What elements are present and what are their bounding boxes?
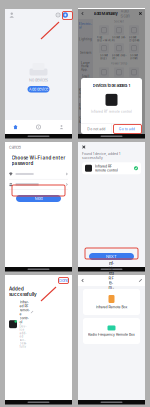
staticText: Infrared RF remote control bbox=[91, 110, 132, 113]
button[interactable]: Infrared Remote Box bbox=[83, 289, 140, 315]
staticText: Added successfully bbox=[9, 286, 37, 297]
button[interactable]: NEXT bbox=[89, 253, 134, 260]
staticText: Power Strip bbox=[110, 62, 127, 65]
staticText: Device added successfully bbox=[19, 325, 26, 348]
staticText: Next bbox=[34, 196, 42, 201]
button[interactable]: Scan bbox=[56, 13, 60, 17]
staticText: Socket (NB-IoT) bbox=[111, 54, 126, 60]
staticText: Sensors bbox=[80, 51, 91, 54]
button[interactable]: Radio Frequency Remote Box bbox=[83, 318, 140, 344]
button[interactable]: Profile bbox=[9, 12, 14, 18]
button[interactable]: Edit bbox=[139, 279, 142, 282]
staticText: Found 1 device, added 1 successfully bbox=[82, 152, 120, 160]
staticText: Socket bbox=[114, 20, 124, 23]
staticText: Kitchen Appliances bbox=[79, 88, 92, 98]
button[interactable]: Next bbox=[16, 195, 61, 202]
staticText: Socket (Wi-Fi) bbox=[112, 36, 126, 42]
button[interactable]: Me bbox=[50, 120, 73, 134]
staticText: Infrared RF remote... bbox=[109, 261, 115, 300]
staticText: Large Home App. bbox=[81, 61, 90, 71]
staticText: Socket (other) bbox=[130, 54, 138, 60]
staticText: Cancel bbox=[9, 145, 21, 150]
staticText: Lighting bbox=[79, 38, 92, 41]
button[interactable]: Done bbox=[59, 278, 68, 283]
staticText: Choose Wi-Fi and enter password bbox=[11, 155, 65, 166]
staticText: Add device bbox=[29, 87, 48, 91]
staticText: Electrical bbox=[79, 22, 92, 29]
staticText: Go to add bbox=[119, 127, 135, 131]
button[interactable]: Go to add bbox=[112, 124, 142, 134]
button[interactable]: Do not add bbox=[81, 124, 111, 134]
staticText: Plug (BLE+Wi-Fi) bbox=[96, 36, 111, 42]
button[interactable]: Add device bbox=[62, 12, 68, 18]
staticText: Do not add bbox=[87, 127, 105, 131]
button[interactable]: Cancel bbox=[9, 145, 21, 150]
staticText: Security & Video bbox=[79, 117, 92, 124]
button[interactable]: Back bbox=[81, 279, 84, 282]
button[interactable]: Smart bbox=[27, 120, 50, 134]
staticText: Exercise & Health bbox=[79, 103, 92, 110]
staticText: Infrared RF remote control bbox=[19, 300, 29, 324]
staticText: Add Manually bbox=[93, 11, 117, 16]
staticText: Small Home App. bbox=[81, 75, 89, 85]
staticText: No devices bbox=[29, 78, 48, 82]
staticText: Radio Frequency Remote Box bbox=[88, 332, 135, 336]
staticText: Socket (BLE) bbox=[100, 54, 108, 60]
staticText: Devices to be added: 1 bbox=[92, 83, 130, 88]
staticText: Infrared RF remote control bbox=[95, 164, 118, 172]
button[interactable]: Close bbox=[82, 145, 86, 149]
staticText: Power Strip (BLE+Wi-Fi) bbox=[96, 78, 111, 84]
staticText: Socket (Zigbee) bbox=[128, 36, 139, 42]
staticText: Done bbox=[59, 278, 68, 283]
staticText: Power Strip (Zigbee) bbox=[126, 78, 141, 84]
button[interactable]: Add device bbox=[27, 86, 49, 92]
button[interactable]: Home bbox=[4, 120, 27, 134]
staticText: NEXT bbox=[106, 254, 117, 259]
staticText: Auto Scan bbox=[120, 9, 129, 18]
staticText: Infrared Remote Box bbox=[95, 305, 127, 309]
